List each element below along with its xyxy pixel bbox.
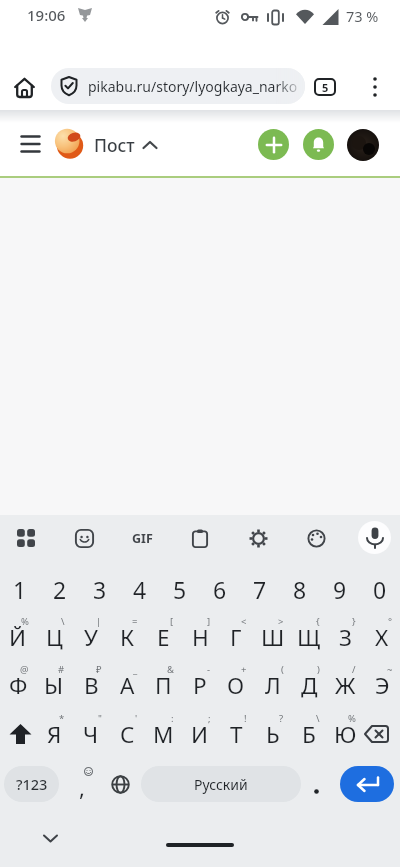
button[interactable]: ?123 [4,766,59,802]
button[interactable]: , [68,766,102,802]
staticText: ) [317,663,320,676]
button[interactable] [364,74,386,100]
button[interactable]: Ч [73,710,109,758]
button[interactable]: Щ [291,613,327,661]
button[interactable] [240,520,276,556]
button[interactable]: Ь [255,710,291,758]
button[interactable]: Ф [0,661,36,709]
staticText: Г [230,622,242,653]
button[interactable]: Пост [92,131,162,159]
staticText: Ю [334,719,357,750]
staticText: Ь [266,719,280,750]
staticText: ~ [387,663,393,676]
button[interactable]: Л [255,661,291,709]
staticText: 5 [173,574,187,605]
button[interactable]: М [145,710,181,758]
button[interactable]: Ж [327,661,363,709]
button[interactable]: О [218,661,254,709]
button[interactable]: pikabu.ru/story/lyogkaya_narko [51,68,305,104]
staticText: Ф [9,670,28,701]
button[interactable] [305,766,327,802]
button[interactable] [182,520,218,556]
button[interactable] [347,129,379,161]
button[interactable]: Ц [36,613,72,661]
button[interactable]: 3 [80,566,120,613]
staticText: : [171,712,174,725]
button[interactable]: Я [36,710,72,758]
button[interactable] [8,520,44,556]
staticText: " [98,712,102,725]
button[interactable]: 2 [40,566,80,613]
staticText: 73 % [346,6,379,26]
button[interactable]: Р [182,661,218,709]
button[interactable]: Б [291,710,327,758]
button[interactable]: С [109,710,145,758]
button[interactable] [102,766,138,802]
staticText: } [352,615,356,628]
button[interactable]: У [73,613,109,661]
button[interactable] [16,130,46,158]
button[interactable]: 9 [320,566,360,613]
staticText: О [227,670,245,701]
button[interactable]: П [145,661,181,709]
button[interactable]: Г [218,613,254,661]
button[interactable]: З [327,613,363,661]
staticText: Р [193,670,207,701]
button[interactable]: Ш [255,613,291,661]
button[interactable]: Х [364,613,400,661]
button[interactable]: GIF [124,520,160,556]
staticText: < [241,615,247,628]
button[interactable]: Й [0,613,36,661]
staticText: ₽ [96,663,102,676]
button[interactable]: 1 [0,566,40,613]
button[interactable]: Русский [141,766,301,802]
staticText: @ [20,663,29,676]
button[interactable] [303,129,334,160]
button[interactable] [340,766,394,802]
button[interactable]: 5 [314,78,336,96]
button[interactable] [54,128,85,159]
button[interactable] [8,71,40,103]
button[interactable]: А [109,661,145,709]
staticText: Х [375,622,389,653]
button[interactable]: 5 [160,566,200,613]
button[interactable]: 8 [280,566,320,613]
button[interactable]: 0 [360,566,400,613]
button[interactable]: Т [218,710,254,758]
staticText: Щ [297,622,321,653]
staticText: Ч [83,719,99,750]
button[interactable]: Е [145,613,181,661]
staticText: М [153,719,174,750]
button[interactable]: К [109,613,145,661]
button[interactable]: 7 [240,566,280,613]
staticText: Пост [94,133,135,157]
staticText: 7 [253,574,267,605]
button[interactable]: Э [364,661,400,709]
button[interactable] [66,520,102,556]
button[interactable]: Н [182,613,218,661]
staticText: - [207,663,211,676]
button[interactable]: 4 [120,566,160,613]
staticText: Ж [335,670,356,701]
button[interactable]: Д [291,661,327,709]
button[interactable]: И [182,710,218,758]
button[interactable]: 6 [200,566,240,613]
staticText: Д [301,670,318,701]
staticText: Й [9,622,27,653]
button[interactable] [258,129,289,160]
button[interactable] [0,710,40,758]
button[interactable]: Ю [327,710,363,758]
button[interactable]: Ы [36,661,72,709]
button[interactable] [356,710,396,758]
button[interactable] [298,520,334,556]
button[interactable] [358,521,391,554]
staticText: 19:06 [27,5,66,25]
button[interactable] [36,827,64,849]
staticText: GIF [132,530,153,547]
staticText: З [339,622,352,653]
staticText: Л [265,670,281,701]
staticText: Э [375,670,390,701]
button[interactable]: В [73,661,109,709]
staticText: 0 [373,574,387,605]
staticText: # [58,663,65,676]
